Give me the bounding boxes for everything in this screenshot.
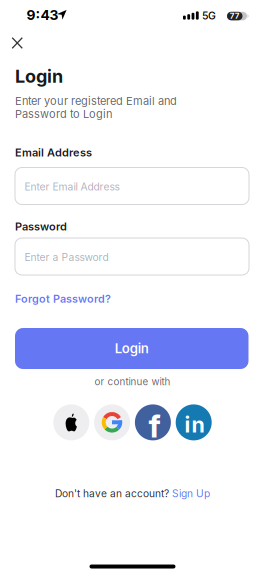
- staticText: Login: [115, 341, 149, 356]
- staticText: Email Address: [15, 146, 92, 159]
- staticText: Login: [15, 65, 63, 87]
- staticText: 5G: [202, 9, 216, 22]
- button[interactable]: Close: [7, 33, 27, 53]
- staticText: Enter a Password: [24, 251, 108, 263]
- button[interactable]: Continue with Apple: [53, 404, 89, 440]
- staticText: Enter your registered Email and Password…: [15, 94, 177, 120]
- button[interactable]: Forgot Password?: [15, 292, 111, 305]
- staticText: 9:43: [26, 7, 58, 23]
- button[interactable]: Continue with Google: [94, 404, 130, 440]
- staticText: or continue with: [94, 376, 170, 388]
- button[interactable]: Continue with Facebook: [135, 404, 171, 440]
- staticText: in: [184, 412, 204, 437]
- button[interactable]: Login: [15, 328, 248, 369]
- button[interactable]: Continue with LinkedIn: [176, 404, 212, 440]
- staticText: Password: [15, 220, 67, 233]
- staticText: Forgot Password?: [15, 292, 111, 305]
- staticText: Don't have an account?: [55, 487, 172, 499]
- staticText: 77: [230, 11, 240, 20]
- staticText: Enter Email Address: [24, 181, 119, 193]
- button[interactable]: Sign Up: [172, 487, 210, 499]
- staticText: f: [148, 407, 160, 445]
- staticText: Sign Up: [172, 487, 210, 499]
